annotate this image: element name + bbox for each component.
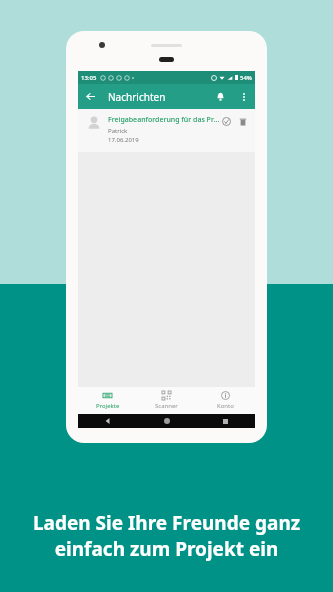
- staticText: Nachrichten: [108, 90, 166, 104]
- button[interactable]: Scanner: [137, 387, 196, 414]
- button[interactable]: Projekte: [78, 387, 137, 414]
- staticText: 54%: [240, 74, 252, 82]
- staticText: 17.06.2019: [108, 136, 139, 144]
- staticText: Scanner: [155, 402, 178, 410]
- button[interactable]: Back: [78, 84, 103, 109]
- staticText: Projekte: [96, 402, 120, 410]
- button[interactable]: Recents: [196, 414, 255, 428]
- button[interactable]: Accept: [220, 115, 233, 128]
- button[interactable]: Home: [137, 414, 196, 428]
- staticText: Patrick: [108, 127, 128, 135]
- staticText: Freigabeanforderung für das Projekt:...: [108, 115, 220, 125]
- staticText: Konto: [217, 402, 234, 410]
- button[interactable]: Delete: [236, 115, 249, 128]
- staticText: Laden Sie Ihre Freunde ganz einfach zum …: [26, 510, 307, 562]
- button[interactable]: Freigabeanforderung für das Projekt:...: [78, 109, 255, 152]
- button[interactable]: Konto: [196, 387, 255, 414]
- button[interactable]: More options: [233, 86, 255, 108]
- button[interactable]: Notifications: [208, 84, 233, 109]
- staticText: 13:05: [81, 74, 97, 82]
- button[interactable]: Back: [78, 414, 137, 428]
